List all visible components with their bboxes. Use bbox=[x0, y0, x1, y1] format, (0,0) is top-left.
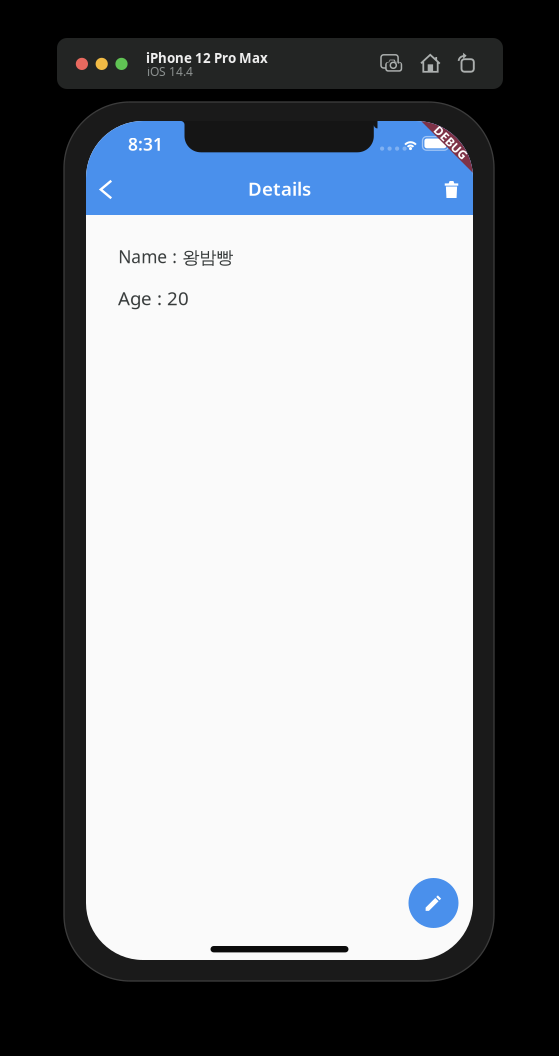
staticText: Details bbox=[248, 176, 311, 201]
staticText: DEBUG bbox=[430, 134, 472, 150]
staticText: iOS 14.4 bbox=[147, 63, 193, 79]
button[interactable]: Home bbox=[415, 48, 445, 78]
staticText: 8:31 bbox=[128, 132, 163, 155]
button[interactable]: Delete bbox=[429, 165, 473, 213]
button[interactable]: Screenshot bbox=[377, 48, 408, 78]
staticText: Name : 왕밤빵 bbox=[118, 245, 233, 268]
button[interactable]: Back bbox=[84, 165, 128, 213]
button[interactable]: Close bbox=[76, 58, 88, 70]
button[interactable]: Edit bbox=[408, 878, 458, 928]
staticText: iPhone 12 Pro Max bbox=[146, 49, 268, 67]
button[interactable]: Zoom bbox=[115, 58, 128, 70]
button[interactable]: Minimise bbox=[96, 58, 108, 70]
staticText: Age : 20 bbox=[118, 285, 189, 310]
button[interactable]: Rotate bbox=[453, 48, 483, 78]
